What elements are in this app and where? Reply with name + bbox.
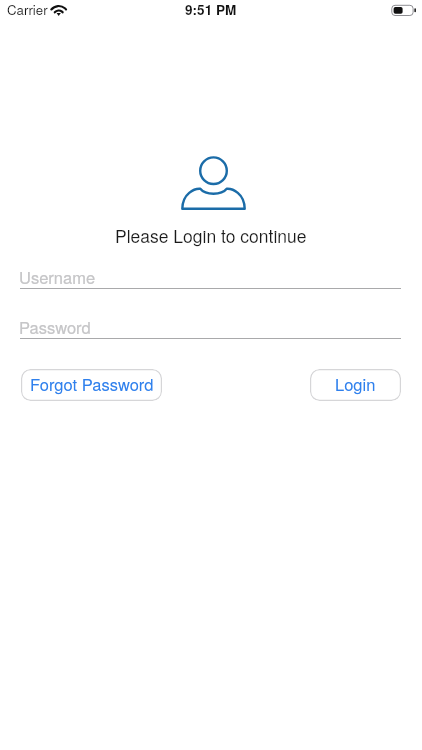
staticText: Please Login to continue	[115, 223, 307, 248]
button[interactable]: Password	[20, 315, 401, 340]
staticText: Password	[19, 315, 91, 339]
staticText: Username	[19, 265, 96, 289]
other: Battery	[391, 4, 419, 18]
staticText: Login	[335, 372, 376, 396]
staticText: 9:51 PM	[185, 0, 237, 19]
button[interactable]: Forgot Password	[21, 369, 162, 401]
staticText: Forgot Password	[30, 372, 154, 396]
button[interactable]: Username	[20, 265, 401, 290]
other: Wi-Fi	[48, 2, 70, 20]
other: User avatar	[181, 150, 246, 212]
staticText: Carrier	[7, 0, 48, 19]
button[interactable]: Login	[310, 369, 401, 401]
